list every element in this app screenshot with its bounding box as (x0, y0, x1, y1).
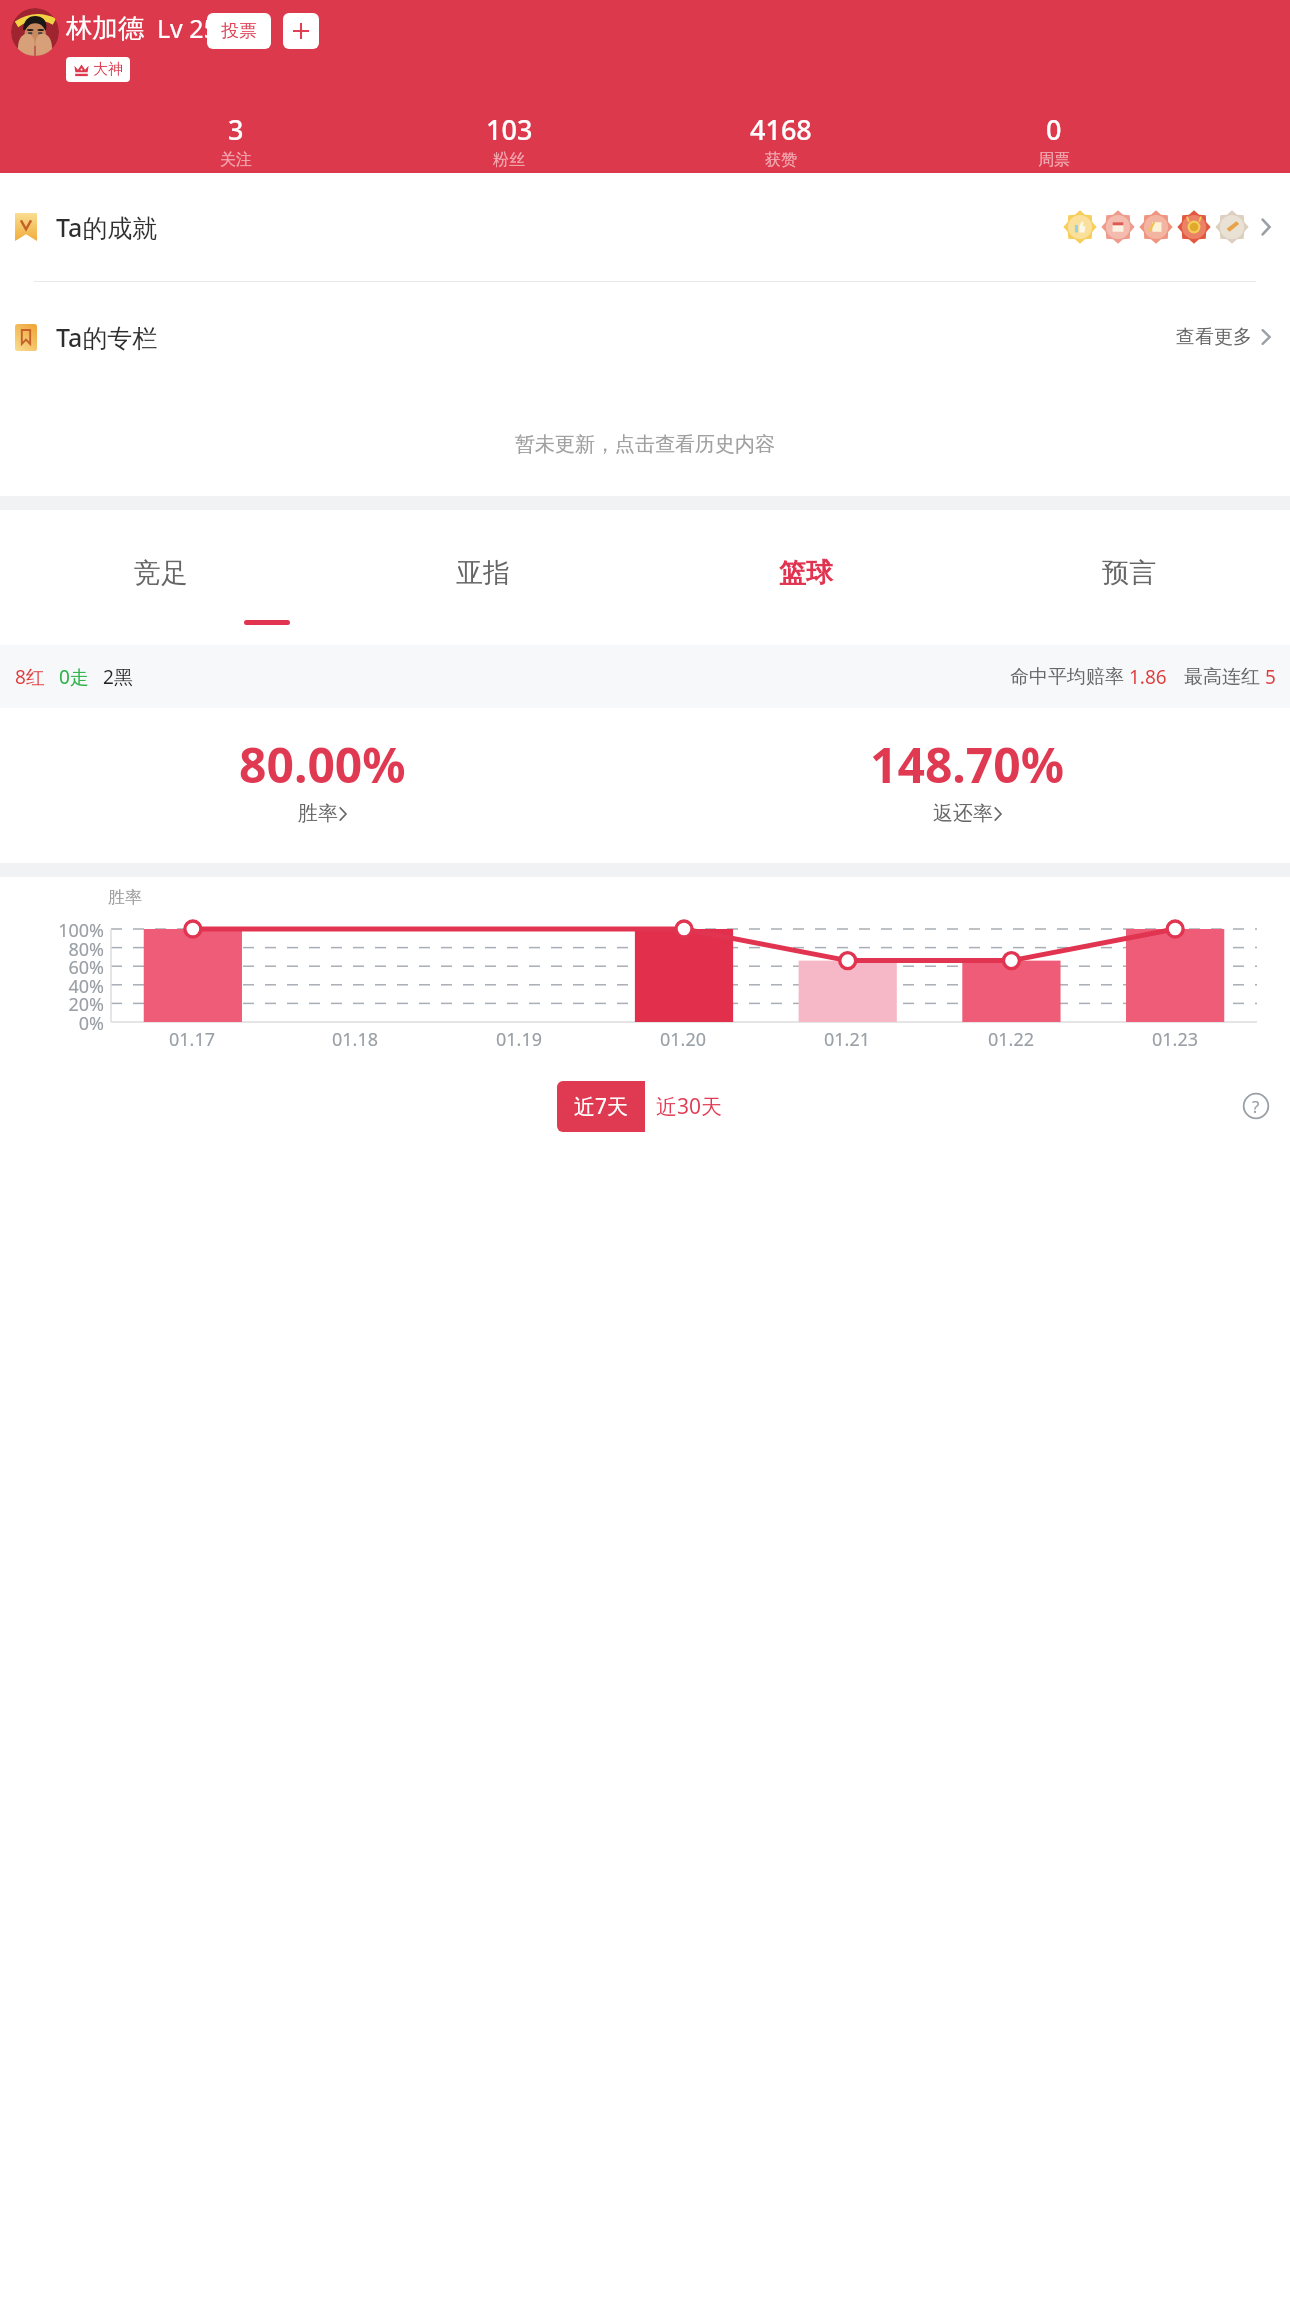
staticText: 关注 (220, 150, 252, 170)
button[interactable]: Ta的专栏 (0, 282, 1290, 392)
staticText: 4168 (750, 111, 812, 148)
staticText: 01.17 (169, 1027, 216, 1052)
staticText: 01.19 (496, 1027, 543, 1052)
staticText: 01.21 (824, 1027, 871, 1052)
staticText: 获赞 (765, 150, 797, 170)
button[interactable]: 篮球 (644, 510, 967, 635)
button[interactable]: 0 (1017, 111, 1091, 170)
button[interactable]: Profile avatar (11, 8, 59, 56)
staticText: 粉丝 (493, 150, 525, 170)
staticText: 5 (1265, 664, 1276, 690)
staticText: 3 (228, 111, 244, 148)
button[interactable]: 148.70% (645, 708, 1290, 863)
staticText: 100% (18, 918, 104, 943)
staticText: 40% (18, 974, 104, 999)
staticText: ? (1252, 1095, 1260, 1118)
staticText: 亚指 (456, 556, 510, 590)
staticText: 最高连红 (1184, 665, 1260, 689)
staticText: 80% (18, 937, 104, 962)
staticText: 返还率 (933, 801, 993, 826)
staticText: 1.86 (1129, 664, 1167, 690)
staticText: 近7天 (574, 1092, 629, 1121)
staticText: Ta的专栏 (56, 320, 158, 354)
button[interactable]: 近7天 (557, 1081, 645, 1132)
button[interactable]: 预言 (967, 510, 1290, 635)
staticText: 01.20 (660, 1027, 707, 1052)
staticText: 投票 (221, 20, 257, 43)
staticText: 8红 (15, 664, 45, 690)
button[interactable]: 亚指 (322, 510, 644, 635)
staticText: 查看更多 (1176, 325, 1252, 349)
staticText: 20% (18, 992, 104, 1017)
button[interactable]: 80.00% (0, 708, 645, 863)
button[interactable]: Ta的成就 (0, 173, 1290, 281)
staticText: 周票 (1038, 150, 1070, 170)
staticText: 暂未更新，点击查看历史内容 (515, 432, 775, 457)
button[interactable]: 4168 (744, 111, 818, 170)
button[interactable]: Add (283, 13, 319, 49)
staticText: 60% (18, 955, 104, 980)
staticText: 0 (1046, 111, 1062, 148)
button[interactable]: 3 (199, 111, 273, 170)
staticText: 竞足 (134, 556, 188, 590)
staticText: 胜率 (298, 801, 338, 826)
staticText: 林加德 (66, 12, 144, 45)
staticText: Ta的成就 (56, 210, 158, 244)
staticText: 148.70% (870, 732, 1065, 797)
button[interactable]: 大神 (66, 57, 130, 82)
staticText: 0% (18, 1011, 104, 1036)
staticText: 近30天 (656, 1092, 723, 1121)
staticText: 01.22 (988, 1027, 1035, 1052)
staticText: 预言 (1102, 556, 1156, 590)
staticText: 0走 (59, 664, 89, 690)
button[interactable]: 近30天 (645, 1081, 733, 1132)
staticText: 01.23 (1152, 1027, 1199, 1052)
staticText: 2黑 (103, 664, 133, 690)
button[interactable]: 竞足 (0, 510, 322, 635)
staticText: 命中平均赔率 (1010, 665, 1124, 689)
staticText: 篮球 (779, 556, 833, 590)
button[interactable]: 投票 (207, 13, 271, 49)
staticText: 80.00% (239, 732, 406, 797)
staticText: Lv 25 (157, 11, 218, 45)
staticText: 胜率 (108, 887, 142, 908)
button[interactable]: 103 (472, 111, 546, 170)
staticText: 103 (486, 111, 533, 148)
staticText: 大神 (93, 60, 123, 79)
button[interactable]: Help (1240, 1090, 1272, 1122)
button[interactable]: 暂未更新，点击查看历史内容 (0, 392, 1290, 496)
staticText: 01.18 (332, 1027, 379, 1052)
